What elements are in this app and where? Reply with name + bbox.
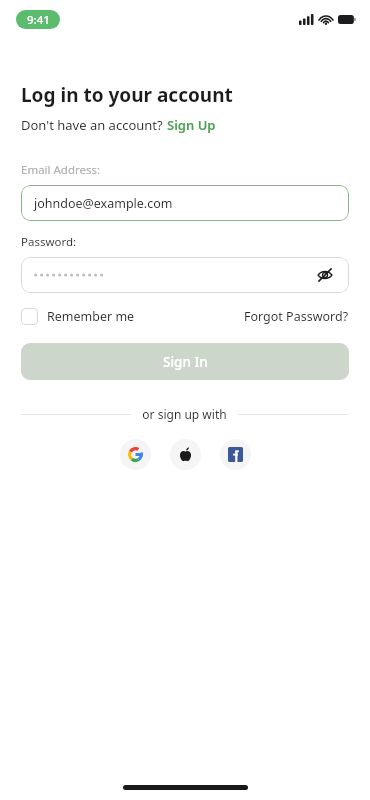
button[interactable]: johndoe@example.com [21,185,349,221]
staticText: Sign In [163,353,208,371]
staticText: Log in to your account [21,82,233,108]
button[interactable]: Sign In [21,343,349,380]
button[interactable]: Show password [314,264,336,286]
staticText: or sign up with [142,406,227,422]
staticText: Sign Up [167,116,216,134]
staticText: Don't have an account? [21,116,167,134]
button[interactable]: Show password [21,257,349,293]
staticText: Email Address: [21,162,101,178]
button[interactable]: Remember me [21,308,135,325]
button[interactable]: Forgot Password? [244,308,349,325]
button[interactable]: Sign in with Facebook [220,439,251,470]
staticText: Password: [21,234,77,250]
button[interactable]: Sign in with Google [120,439,151,470]
button[interactable]: Sign Up [167,116,216,134]
staticText: Remember me [47,308,135,325]
button[interactable]: Sign in with Apple [170,439,201,470]
staticText: 9:41 [27,12,50,28]
staticText: johndoe@example.com [34,195,173,212]
staticText: Forgot Password? [244,308,349,325]
